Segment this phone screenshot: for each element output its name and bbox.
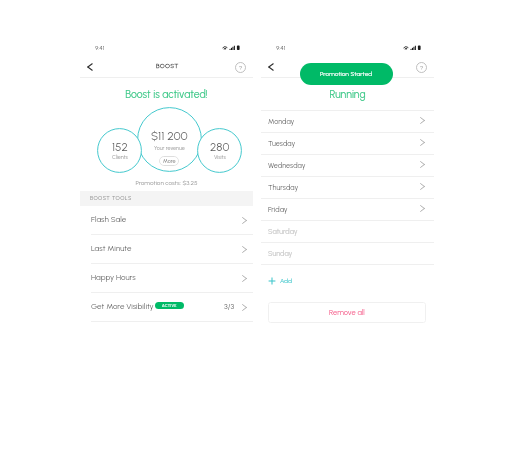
staticText: Running — [261, 88, 434, 101]
button[interactable]: Remove all — [268, 302, 426, 323]
staticText: 152 — [112, 140, 128, 154]
staticText: Get More Visibility — [91, 301, 154, 311]
staticText: $11 200 — [151, 129, 188, 143]
staticText: Add — [280, 277, 292, 285]
staticText: 9:41 — [276, 44, 286, 51]
staticText: Saturday — [268, 227, 298, 236]
button[interactable]: Happy Hours — [80, 264, 253, 292]
button[interactable]: Help — [234, 61, 247, 74]
button[interactable]: Add — [265, 274, 295, 288]
staticText: 280 — [210, 140, 230, 154]
button[interactable]: Monday — [261, 111, 434, 132]
button[interactable]: Friday — [261, 199, 434, 220]
staticText: Tuesday — [268, 139, 296, 148]
staticText: Happy Hours — [91, 272, 136, 282]
staticText: Visits — [214, 154, 226, 160]
staticText: Remove all — [329, 308, 365, 317]
button[interactable]: Tuesday — [261, 133, 434, 154]
staticText: BOOST TOOLS — [90, 195, 132, 202]
button[interactable]: Get More Visibility — [80, 293, 253, 321]
staticText: Promotion Started — [320, 70, 373, 78]
staticText: ? — [239, 64, 243, 72]
button[interactable]: Thursday — [261, 177, 434, 198]
staticText: 9:41 — [95, 44, 105, 51]
button[interactable]: Promotion Started — [300, 63, 393, 85]
staticText: Promotion costs: $3.25 — [80, 179, 253, 187]
button[interactable]: Back — [264, 59, 277, 75]
staticText: Wednesday — [268, 161, 306, 170]
staticText: ? — [420, 64, 424, 72]
button[interactable]: Flash Sale — [80, 206, 253, 234]
button[interactable]: Last Minute — [80, 235, 253, 263]
button[interactable]: Wednesday — [261, 155, 434, 176]
staticText: Thursday — [268, 183, 299, 192]
staticText: More — [163, 158, 176, 165]
staticText: Friday — [268, 205, 288, 214]
staticText: ACTIVE — [162, 303, 177, 308]
staticText: Boost is activated! — [80, 88, 253, 101]
button[interactable]: More — [159, 156, 179, 166]
staticText: Monday — [268, 117, 295, 126]
button[interactable]: Back — [83, 59, 96, 75]
staticText: Your revenue — [154, 145, 185, 151]
button[interactable]: Help — [415, 61, 428, 74]
staticText: 3/3 — [224, 302, 235, 311]
button[interactable]: Saturday — [261, 221, 434, 242]
staticText: Last Minute — [91, 243, 132, 253]
staticText: BOOST — [156, 62, 179, 70]
staticText: Flash Sale — [91, 214, 127, 224]
button[interactable]: Sunday — [261, 243, 434, 264]
staticText: Sunday — [268, 249, 293, 258]
staticText: Clients — [112, 154, 128, 160]
